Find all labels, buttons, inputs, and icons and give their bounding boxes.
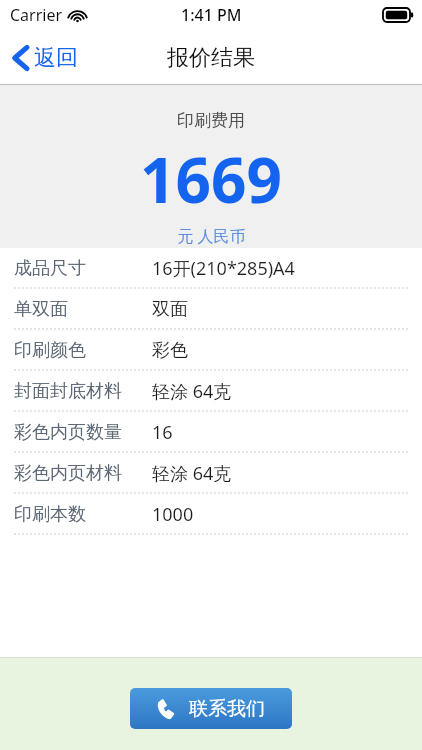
staticText: 轻涂 64克	[152, 379, 232, 404]
staticText: 印刷本数	[14, 503, 86, 526]
staticText: 元 人民币	[177, 225, 246, 247]
staticText: 1669	[140, 137, 282, 221]
staticText: 联系我们	[189, 697, 265, 721]
button[interactable]: 封面封底材料	[0, 371, 422, 411]
staticText: 16开(210*285)A4	[152, 256, 295, 281]
button[interactable]: 联系我们	[130, 688, 292, 729]
staticText: Carrier	[10, 4, 63, 26]
staticText: 报价结果	[167, 44, 255, 72]
staticText: 印刷费用	[177, 110, 245, 131]
staticText: 彩色内页材料	[14, 462, 122, 485]
button[interactable]: 返回	[8, 38, 82, 78]
button[interactable]: 彩色内页数量	[0, 412, 422, 452]
staticText: 1000	[152, 502, 194, 527]
staticText: 双面	[152, 298, 188, 321]
staticText: 成品尺寸	[14, 257, 86, 280]
staticText: 彩色内页数量	[14, 421, 122, 444]
button[interactable]: 彩色内页材料	[0, 453, 422, 493]
staticText: 轻涂 64克	[152, 461, 232, 486]
button[interactable]: 印刷本数	[0, 494, 422, 534]
staticText: 返回	[34, 44, 78, 72]
staticText: 印刷颜色	[14, 339, 86, 362]
staticText: 彩色	[152, 339, 188, 362]
staticText: 1:41 PM	[181, 4, 242, 26]
button[interactable]: 成品尺寸	[0, 248, 422, 288]
button[interactable]: 单双面	[0, 289, 422, 329]
staticText: 封面封底材料	[14, 380, 122, 403]
staticText: 单双面	[14, 298, 68, 321]
button[interactable]: 印刷颜色	[0, 330, 422, 370]
staticText: 16	[152, 420, 173, 445]
